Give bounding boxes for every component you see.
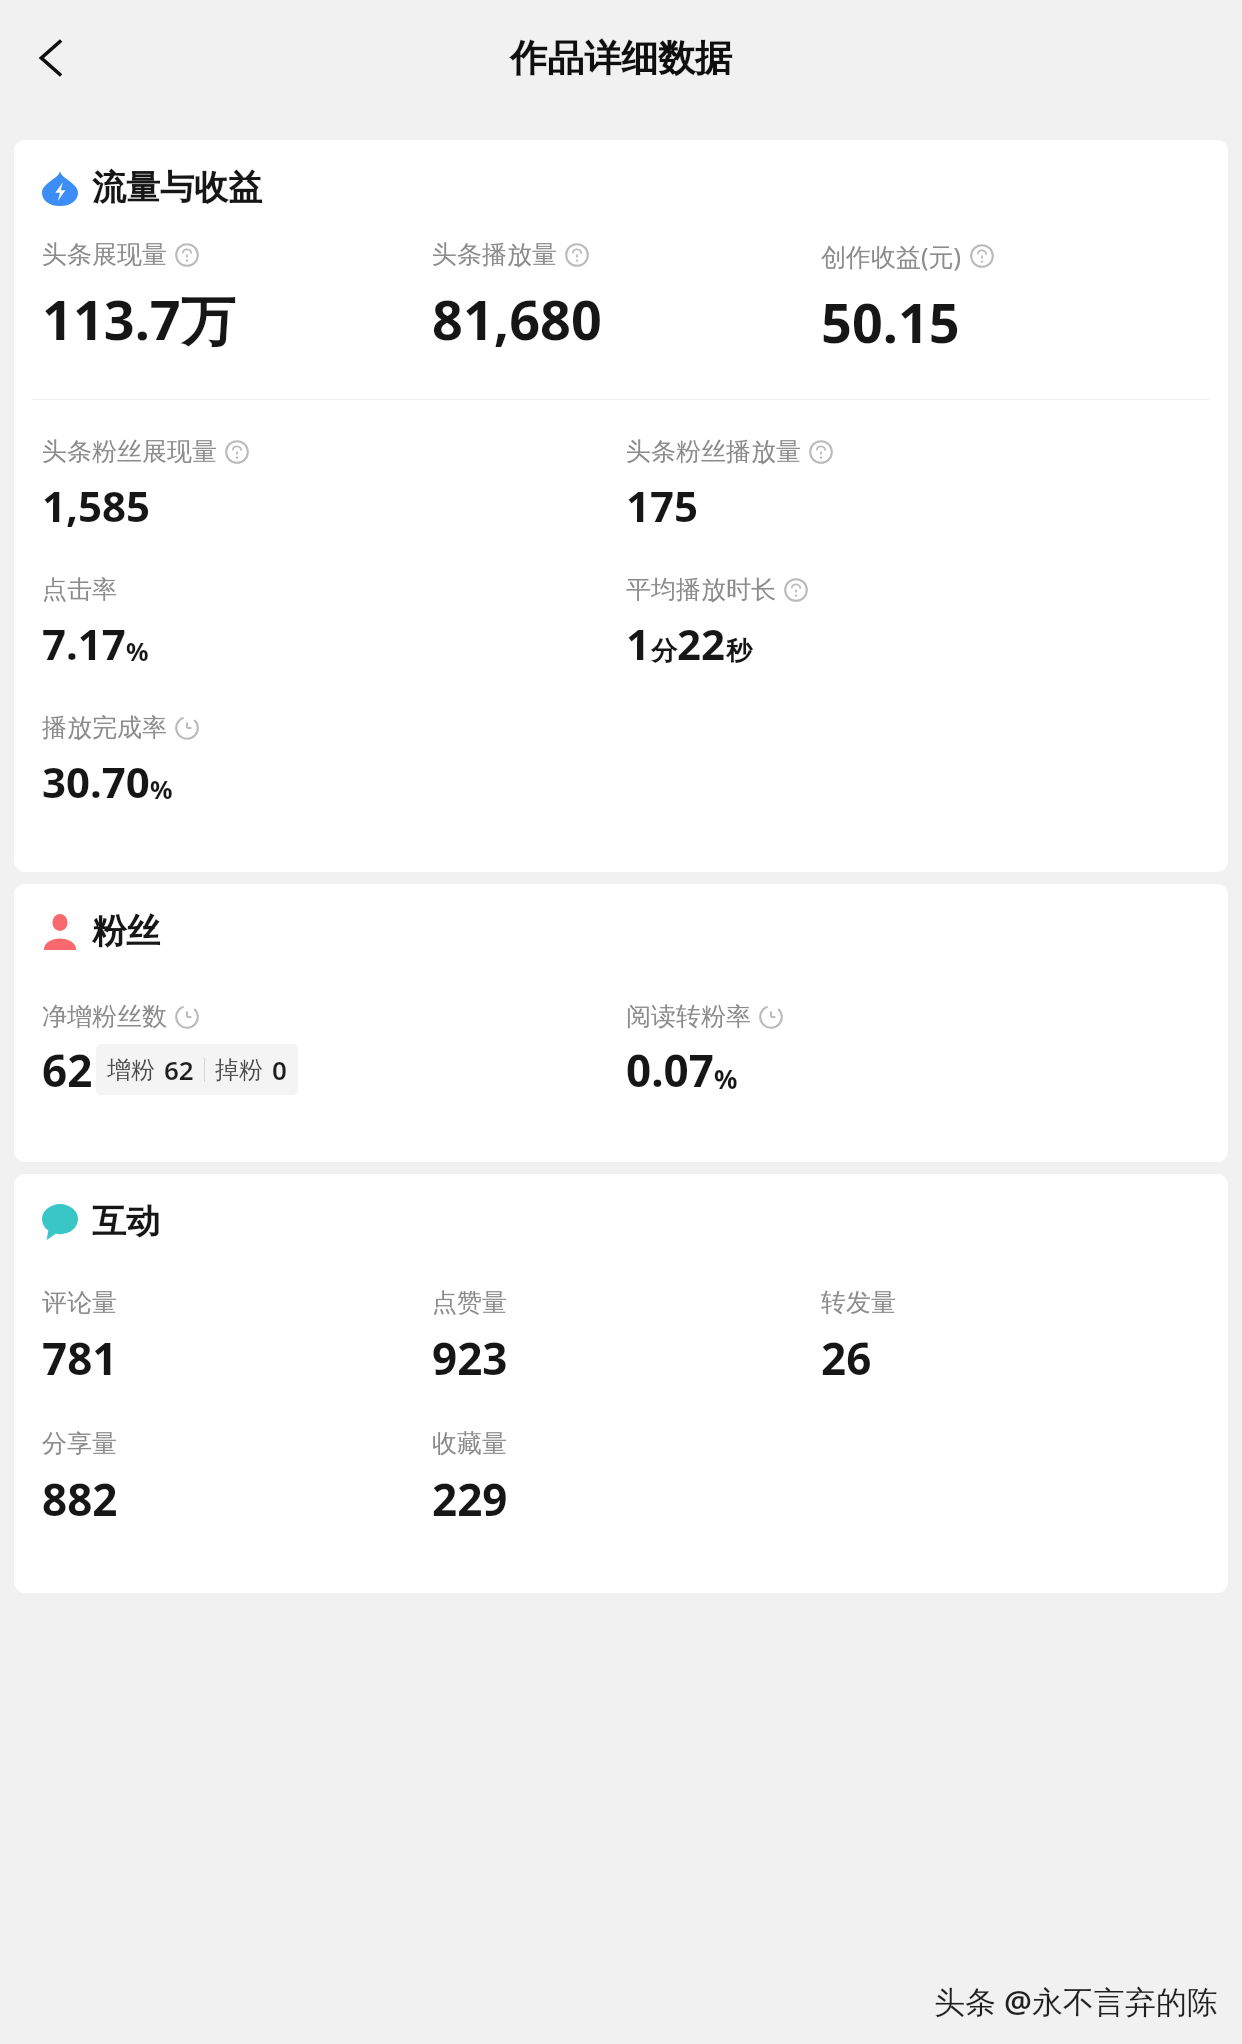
button[interactable]: 创作收益(元): [821, 239, 1210, 359]
staticText: 转发量: [821, 1287, 896, 1318]
staticText: 113.7万: [42, 282, 235, 356]
staticText: 50.15: [821, 285, 960, 359]
staticText: 掉粉: [215, 1055, 263, 1085]
staticText: 头条展现量: [42, 239, 167, 270]
button[interactable]: 转发量: [821, 1287, 1210, 1388]
staticText: 1: [626, 615, 651, 672]
staticText: 创作收益(元): [821, 239, 962, 273]
staticText: %: [126, 634, 149, 668]
button[interactable]: 头条展现量: [42, 239, 432, 356]
button[interactable]: 评论量: [42, 1287, 432, 1388]
staticText: 净增粉丝数: [42, 1001, 167, 1032]
staticText: %: [714, 1061, 738, 1096]
staticText: 62: [42, 1040, 93, 1100]
staticText: 分享量: [42, 1428, 117, 1459]
button[interactable]: 点击率: [42, 574, 626, 672]
staticText: 头条播放量: [432, 239, 557, 270]
staticText: 点赞量: [432, 1287, 507, 1318]
staticText: 175: [626, 477, 699, 534]
staticText: 收藏量: [432, 1428, 507, 1459]
button[interactable]: 点赞量: [432, 1287, 821, 1388]
staticText: 0.07: [626, 1040, 714, 1100]
button[interactable]: 头条粉丝展现量: [42, 436, 626, 534]
button[interactable]: 头条播放量: [432, 239, 821, 356]
staticText: 作品详细数据: [510, 35, 732, 82]
button[interactable]: 头条粉丝播放量: [626, 436, 1210, 534]
staticText: 分: [651, 635, 677, 668]
staticText: 头条粉丝播放量: [626, 436, 801, 467]
staticText: 头条粉丝展现量: [42, 436, 217, 467]
staticText: 30.70: [42, 753, 150, 810]
staticText: 粉丝: [92, 910, 160, 953]
staticText: 781: [42, 1328, 118, 1388]
button[interactable]: 增粉: [96, 1044, 298, 1095]
staticText: 229: [432, 1469, 508, 1529]
button[interactable]: 收藏量: [432, 1428, 821, 1529]
staticText: 平均播放时长: [626, 574, 776, 605]
staticText: 81,680: [432, 282, 602, 356]
staticText: 7.17: [42, 615, 126, 672]
button[interactable]: 平均播放时长: [626, 574, 1210, 672]
staticText: 点击率: [42, 574, 117, 605]
staticText: 播放完成率: [42, 712, 167, 743]
staticText: 923: [432, 1328, 508, 1388]
staticText: %: [150, 772, 173, 806]
button[interactable]: 阅读转粉率: [626, 1001, 1210, 1100]
button[interactable]: Back: [14, 20, 90, 96]
staticText: 882: [42, 1469, 118, 1529]
staticText: 0: [272, 1052, 287, 1087]
staticText: 增粉: [107, 1055, 155, 1085]
staticText: 1,585: [42, 477, 151, 534]
staticText: 22: [677, 615, 726, 672]
staticText: 62: [164, 1052, 194, 1087]
staticText: 流量与收益: [92, 166, 262, 209]
staticText: 阅读转粉率: [626, 1001, 751, 1032]
staticText: 秒: [726, 635, 752, 668]
staticText: 头条 @永不言弃的陈: [934, 1980, 1218, 2022]
button[interactable]: 播放完成率: [42, 712, 626, 810]
staticText: 评论量: [42, 1287, 117, 1318]
button[interactable]: 分享量: [42, 1428, 432, 1529]
staticText: 26: [821, 1328, 872, 1388]
staticText: 互动: [92, 1200, 160, 1243]
